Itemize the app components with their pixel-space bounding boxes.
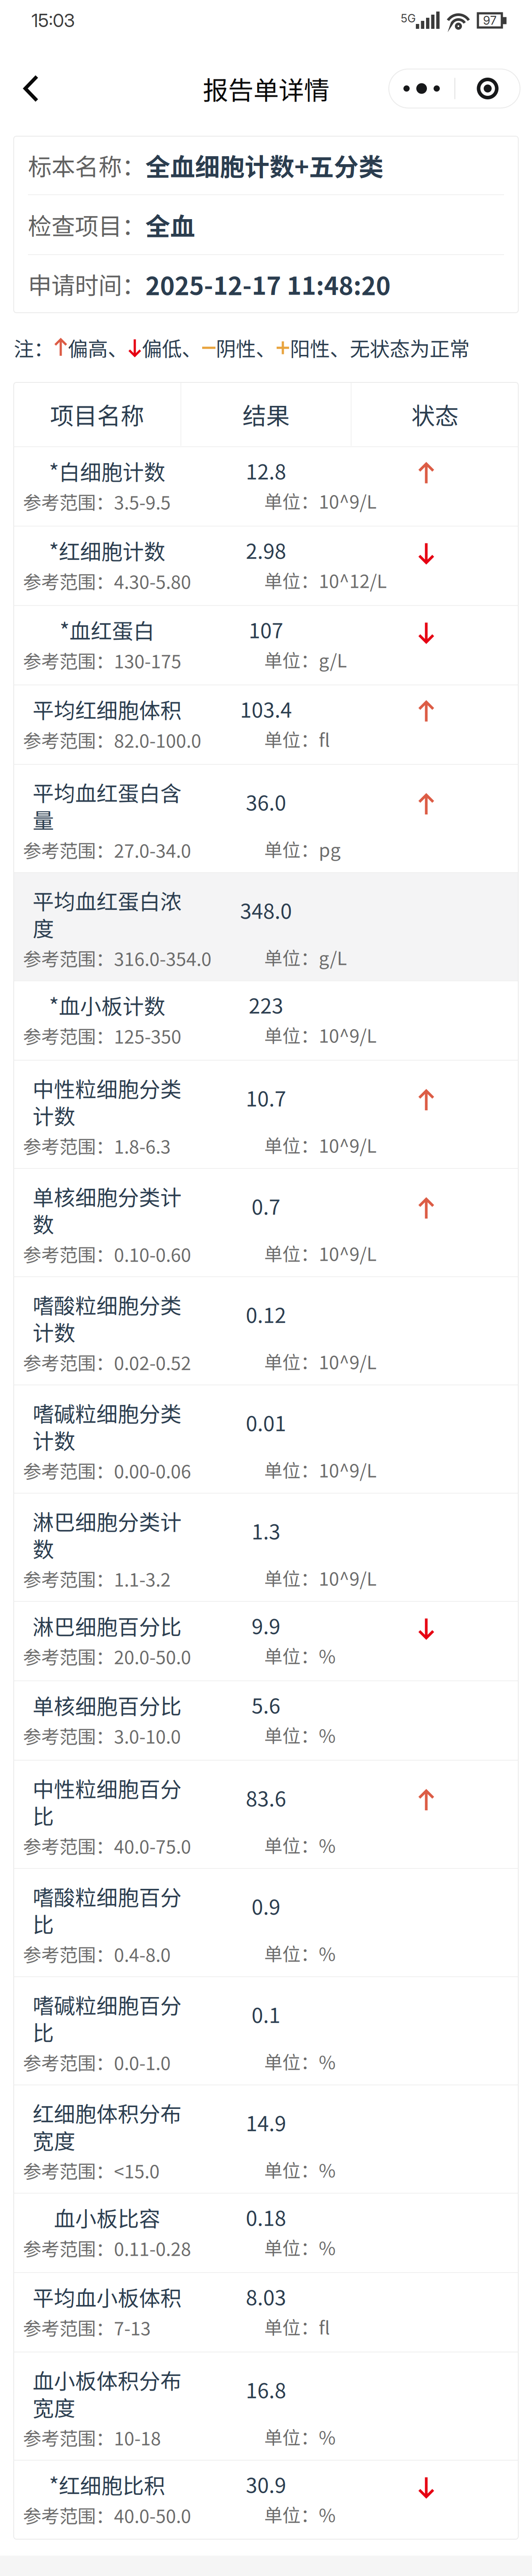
- staticText: 83.6: [246, 1782, 286, 1812]
- staticText: 10.7: [246, 1082, 286, 1112]
- staticText: 血小板体积分布宽度: [33, 2366, 182, 2420]
- staticText: 中性粒细胞百分比: [33, 1774, 182, 1829]
- staticText: 参考范围：82.0-100.0: [23, 726, 201, 753]
- staticText: 223: [249, 990, 283, 1020]
- staticText: 12.8: [246, 455, 286, 485]
- staticText: 嗜碱粒细胞分类计数: [33, 1399, 182, 1453]
- staticText: 参考范围：125-350: [23, 1022, 181, 1049]
- button[interactable]: Back: [0, 41, 58, 136]
- staticText: 偏低、: [142, 333, 202, 362]
- staticText: *血小板计数: [49, 991, 165, 1019]
- staticText: 14.9: [246, 2107, 286, 2137]
- staticText: 单核细胞分类计数: [33, 1183, 182, 1237]
- staticText: 单位：fl: [264, 726, 330, 752]
- staticText: 单位：%: [264, 2234, 336, 2260]
- button[interactable]: Mini program menu: [455, 69, 520, 108]
- staticText: *血红蛋白: [60, 616, 155, 643]
- staticText: 中性粒细胞分类计数: [33, 1074, 182, 1129]
- staticText: 参考范围：40.0-50.0: [23, 2502, 191, 2528]
- staticText: 全血: [145, 207, 195, 243]
- staticText: 348.0: [240, 895, 292, 925]
- staticText: 103.4: [240, 694, 292, 724]
- staticText: 8.03: [246, 2281, 286, 2311]
- staticText: 5.6: [252, 1690, 280, 1720]
- staticText: 参考范围：10-18: [23, 2424, 161, 2451]
- staticText: 参考范围：130-175: [23, 647, 181, 674]
- staticText: 单位：%: [264, 1831, 336, 1858]
- staticText: 参考范围：40.0-75.0: [23, 1832, 191, 1859]
- staticText: 单位：10^9/L: [264, 1456, 376, 1483]
- staticText: 参考范围：0.4-8.0: [23, 1941, 171, 1967]
- staticText: 单位：%: [264, 2501, 336, 2527]
- staticText: 嗜酸粒细胞百分比: [33, 1883, 182, 1937]
- staticText: 30.9: [246, 2469, 286, 2499]
- staticText: *白细胞计数: [49, 457, 165, 485]
- staticText: 0.18: [246, 2202, 286, 2232]
- staticText: 单位：%: [264, 1721, 336, 1748]
- staticText: 参考范围：1.1-3.2: [23, 1565, 171, 1592]
- staticText: 单位：%: [264, 1940, 336, 1966]
- staticText: 检查项目：: [28, 208, 145, 242]
- staticText: 0.12: [246, 1299, 286, 1329]
- staticText: 单位：10^9/L: [264, 487, 376, 514]
- staticText: 107: [249, 614, 283, 644]
- staticText: 血小板比容: [54, 2204, 160, 2231]
- staticText: 参考范围：3.0-10.0: [23, 1722, 181, 1749]
- staticText: 嗜酸粒细胞分类计数: [33, 1291, 182, 1345]
- staticText: 参考范围：0.11-0.28: [23, 2235, 191, 2261]
- staticText: 参考范围：4.30-5.80: [23, 568, 191, 594]
- staticText: 阴性、: [216, 333, 276, 362]
- staticText: 参考范围：20.0-50.0: [23, 1643, 191, 1669]
- staticText: 全血细胞计数+五分类: [145, 147, 383, 183]
- staticText: 平均血红蛋白浓度: [33, 887, 182, 941]
- staticText: 1.3: [252, 1515, 280, 1545]
- staticText: 参考范围：316.0-354.0: [23, 945, 211, 971]
- staticText: 淋巴细胞百分比: [33, 1612, 182, 1639]
- staticText: 状态: [411, 397, 458, 431]
- staticText: 平均血小板体积: [33, 2283, 182, 2310]
- staticText: 36.0: [246, 787, 286, 817]
- staticText: 16.8: [246, 2374, 286, 2404]
- staticText: 97: [483, 13, 497, 28]
- staticText: 注：: [14, 333, 54, 362]
- staticText: 单位：10^9/L: [264, 1240, 376, 1266]
- staticText: 单位：10^9/L: [264, 1348, 376, 1375]
- staticText: 单位：%: [264, 2423, 336, 2450]
- staticText: 0.1: [252, 1999, 280, 2029]
- staticText: 2025-12-17 11:48:20: [145, 266, 391, 302]
- staticText: 红细胞体积分布宽度: [33, 2099, 182, 2153]
- staticText: 阳性、无状态为正常: [290, 333, 469, 362]
- staticText: 0.01: [246, 1407, 286, 1437]
- staticText: 参考范围：0.0-1.0: [23, 2049, 171, 2075]
- staticText: 单位：fl: [264, 2313, 330, 2340]
- staticText: 平均血红蛋白含量: [33, 779, 182, 833]
- button[interactable]: More: [389, 69, 454, 108]
- staticText: 参考范围：27.0-34.0: [23, 836, 191, 863]
- staticText: 标本名称：: [28, 148, 145, 182]
- staticText: 淋巴细胞分类计数: [33, 1507, 182, 1562]
- staticText: 偏高、: [68, 333, 128, 362]
- staticText: 单位：%: [264, 2156, 336, 2183]
- staticText: 报告单详情: [203, 70, 329, 107]
- staticText: 项目名称: [50, 397, 144, 431]
- staticText: 参考范围：3.5-9.5: [23, 488, 171, 515]
- staticText: 0.9: [252, 1891, 280, 1921]
- staticText: 单位：%: [264, 2048, 336, 2075]
- staticText: 嗜碱粒细胞百分比: [33, 1991, 182, 2045]
- staticText: 5G: [401, 12, 416, 25]
- staticText: 参考范围：7-13: [23, 2314, 151, 2341]
- staticText: 参考范围：0.10-0.60: [23, 1241, 191, 1267]
- staticText: *红细胞计数: [49, 537, 165, 564]
- staticText: *红细胞比积: [49, 2471, 165, 2498]
- staticText: 单位：10^12/L: [264, 567, 387, 593]
- staticText: 单位：10^9/L: [264, 1131, 376, 1158]
- staticText: 结果: [243, 397, 289, 431]
- staticText: 参考范围：<15.0: [23, 2157, 160, 2184]
- staticText: 15:03: [31, 9, 75, 31]
- staticText: 0.7: [252, 1191, 280, 1221]
- staticText: 参考范围：0.02-0.52: [23, 1349, 191, 1375]
- staticText: 平均红细胞体积: [33, 696, 182, 723]
- staticText: 单位：10^9/L: [264, 1564, 376, 1591]
- staticText: 参考范围：0.00-0.06: [23, 1457, 191, 1484]
- staticText: 参考范围：1.8-6.3: [23, 1132, 171, 1159]
